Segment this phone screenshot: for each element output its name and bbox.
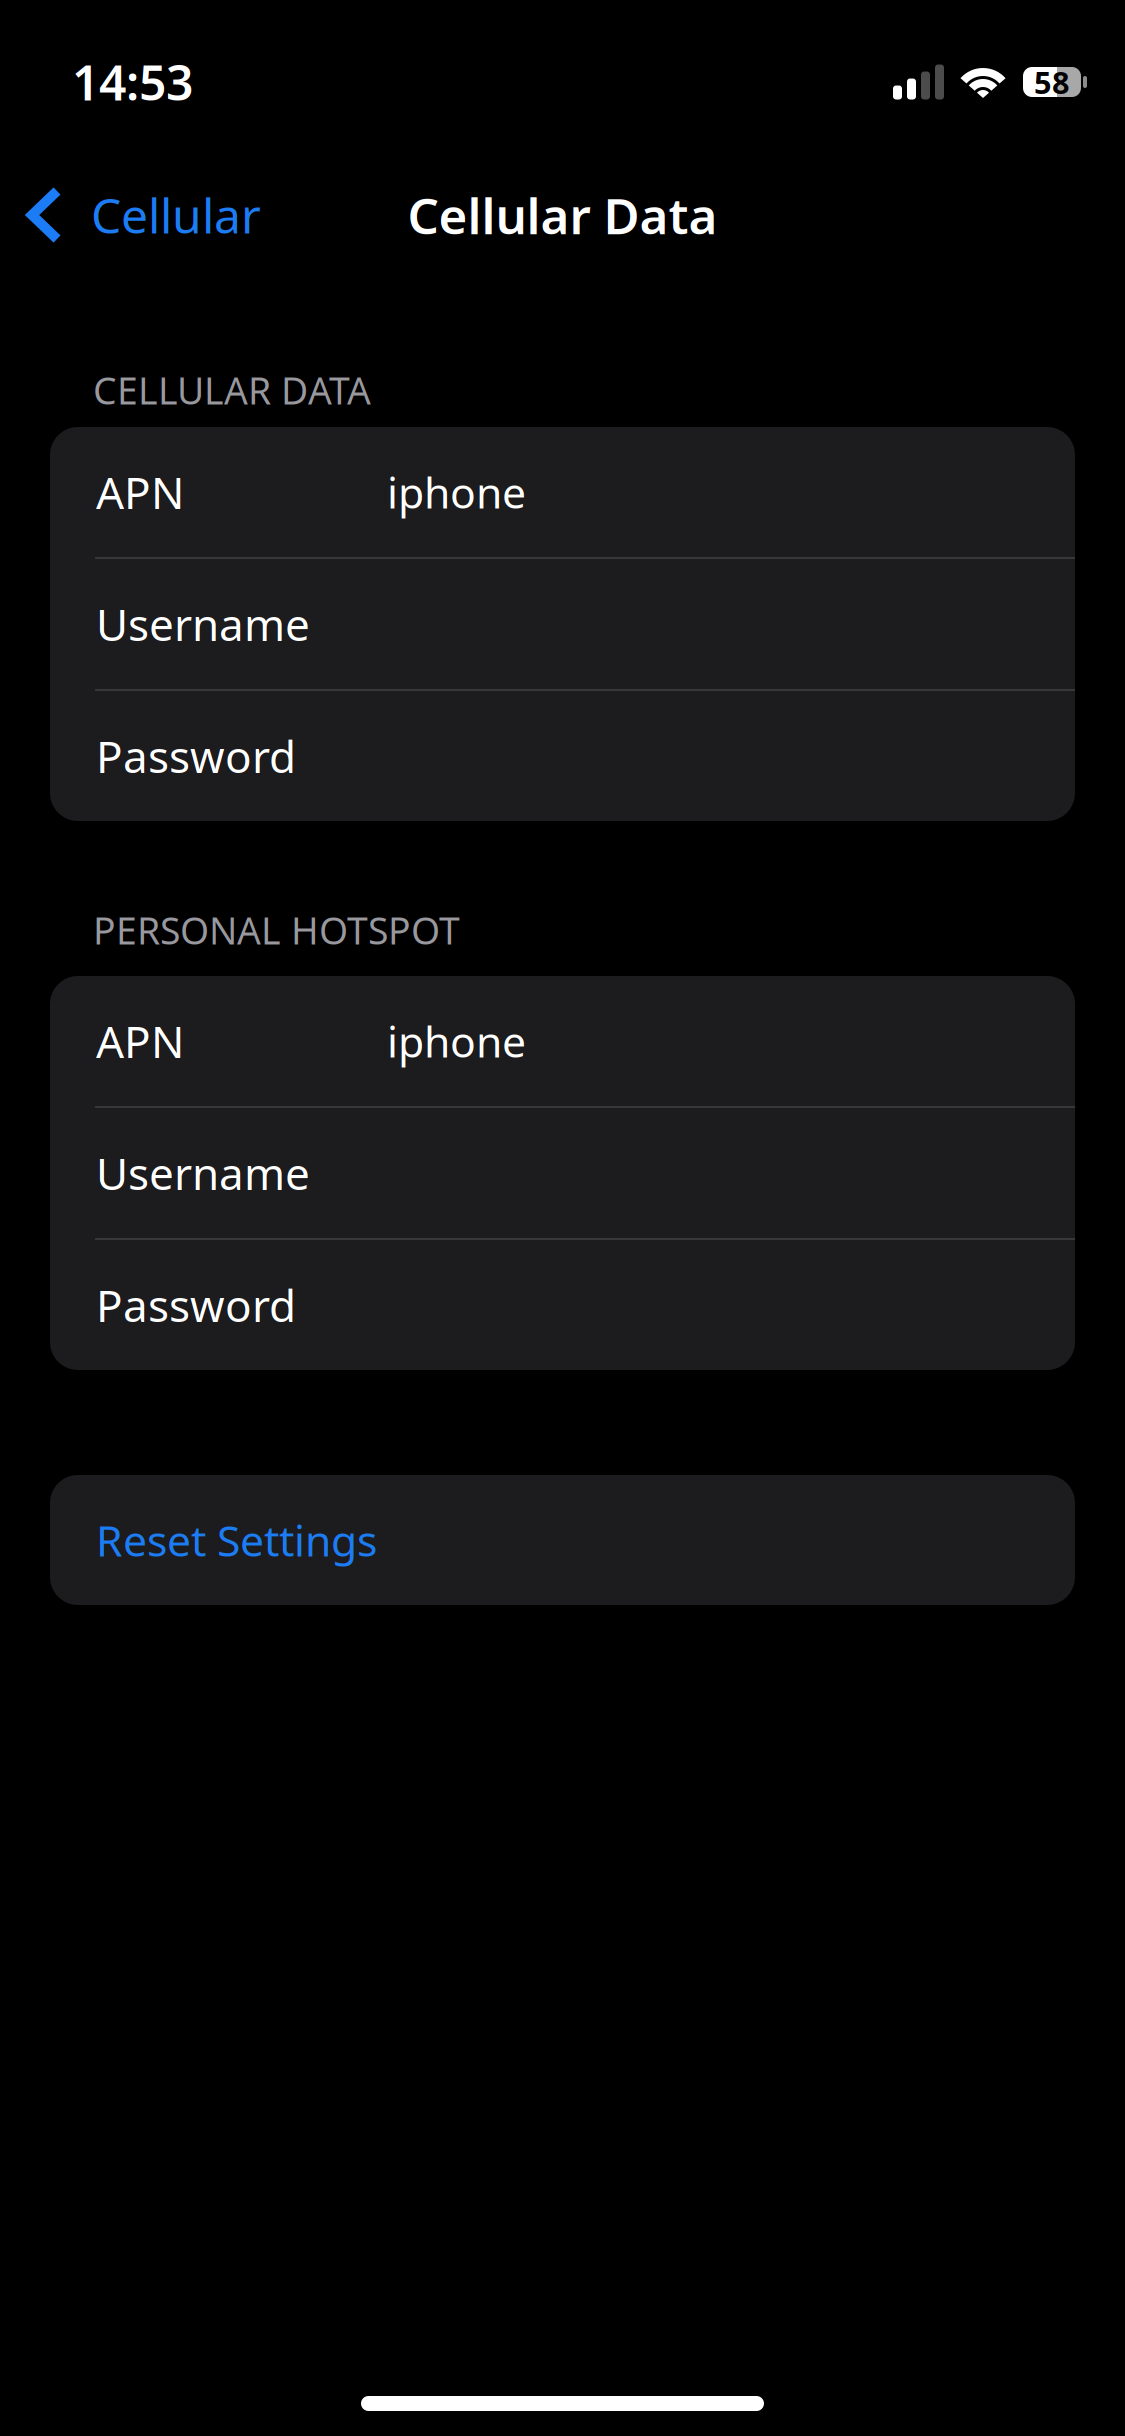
staticText: Cellular: [91, 183, 261, 247]
staticText: 58: [1034, 62, 1070, 102]
staticText: iphone: [387, 1013, 526, 1069]
staticText: iphone: [387, 464, 526, 520]
staticText: PERSONAL HOTSPOT: [93, 905, 460, 955]
staticText: APN: [96, 463, 184, 521]
staticText: APN: [96, 1012, 184, 1070]
staticText: Username: [96, 1144, 310, 1202]
button[interactable]: Username: [50, 1108, 1075, 1238]
button[interactable]: Username: [50, 559, 1075, 689]
button[interactable]: Reset Settings: [50, 1475, 1075, 1605]
button[interactable]: Password: [50, 1240, 1075, 1370]
button[interactable]: APN: [50, 976, 1075, 1106]
staticText: Cellular Data: [407, 182, 717, 248]
button[interactable]: Password: [50, 691, 1075, 821]
staticText: Reset Settings: [96, 1512, 377, 1568]
staticText: Username: [96, 595, 310, 653]
staticText: Password: [96, 727, 296, 785]
staticText: 14:53: [72, 50, 193, 114]
button[interactable]: APN: [50, 427, 1075, 557]
staticText: CELLULAR DATA: [93, 365, 371, 415]
button[interactable]: Back to Cellular: [0, 150, 281, 280]
staticText: Password: [96, 1276, 296, 1334]
